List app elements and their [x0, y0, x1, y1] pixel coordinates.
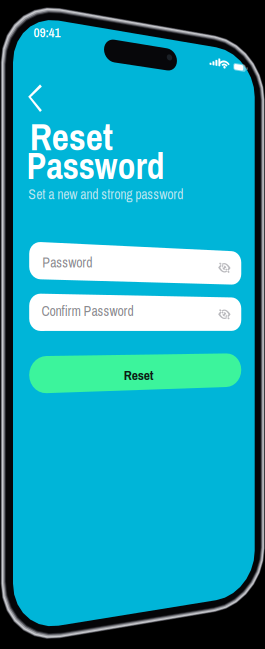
staticText: Password — [42, 253, 92, 272]
button[interactable] — [0, 0, 265, 649]
staticText: Reset — [30, 112, 113, 162]
button[interactable] — [0, 0, 265, 649]
staticText: 09:41 — [34, 23, 61, 41]
staticText: Password — [26, 142, 164, 190]
staticText: Reset — [124, 366, 154, 384]
staticText: Set a new and strong password — [28, 185, 183, 204]
staticText: Confirm Password — [41, 302, 133, 320]
button[interactable]: Back — [0, 0, 265, 649]
button[interactable] — [0, 0, 265, 649]
